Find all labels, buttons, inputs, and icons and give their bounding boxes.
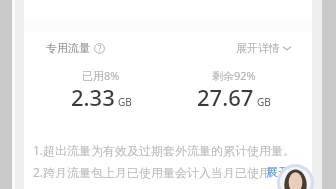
staticText: 展开详情 — [236, 41, 280, 55]
button[interactable]: Customer service — [277, 164, 314, 189]
staticText: 2.跨月流量包上月已使用量会计入当月已使用 — [33, 164, 272, 180]
staticText: 1.超出流量为有效及过期套外流量的累计使用量。 — [33, 142, 296, 158]
staticText: GB — [118, 95, 132, 109]
button[interactable]: 展开 — [266, 164, 290, 179]
staticText: ? — [98, 43, 102, 54]
button[interactable]: Help — [94, 43, 105, 54]
button[interactable]: 展开详情 — [236, 41, 292, 55]
staticText: 27.67 — [197, 82, 254, 112]
staticText: 已用8% — [82, 68, 120, 83]
staticText: 2.33 — [71, 82, 115, 112]
staticText: GB — [257, 95, 271, 109]
staticText: 剩余92% — [212, 68, 256, 83]
staticText: 专用流量 — [46, 41, 90, 55]
